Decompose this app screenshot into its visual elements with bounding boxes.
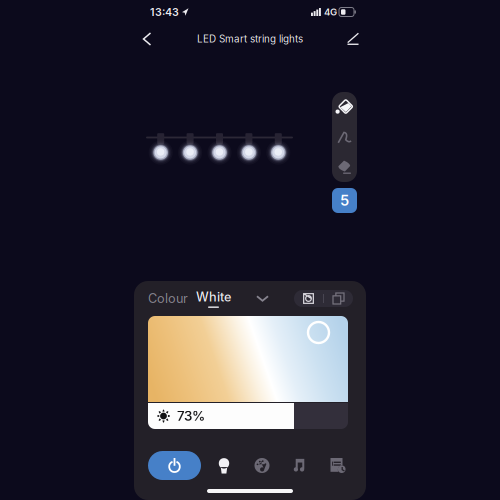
staticText: 5 bbox=[340, 192, 349, 209]
staticText: 13:43 bbox=[150, 5, 179, 18]
staticText: White bbox=[196, 289, 231, 304]
staticText: 73% bbox=[177, 408, 205, 424]
staticText: 4G bbox=[324, 6, 337, 18]
button[interactable]: Brush bbox=[332, 122, 357, 152]
button[interactable]: Power bbox=[148, 451, 201, 480]
button[interactable]: Light bbox=[209, 451, 239, 480]
button[interactable]: Eraser bbox=[332, 152, 357, 182]
button[interactable]: Edit bbox=[340, 26, 366, 52]
button[interactable]: Colour picker bbox=[294, 290, 323, 307]
button[interactable]: Schedule bbox=[323, 451, 353, 480]
button[interactable]: Duplicate bbox=[324, 290, 353, 307]
button[interactable]: Music bbox=[285, 451, 315, 480]
button[interactable]: Fill colour bbox=[332, 92, 357, 122]
staticText: LED Smart string lights bbox=[197, 33, 303, 45]
button[interactable]: Back bbox=[134, 26, 160, 52]
button[interactable]: 5 bbox=[332, 188, 357, 213]
staticText: Colour bbox=[148, 291, 188, 306]
button[interactable]: Scenes bbox=[247, 451, 277, 480]
